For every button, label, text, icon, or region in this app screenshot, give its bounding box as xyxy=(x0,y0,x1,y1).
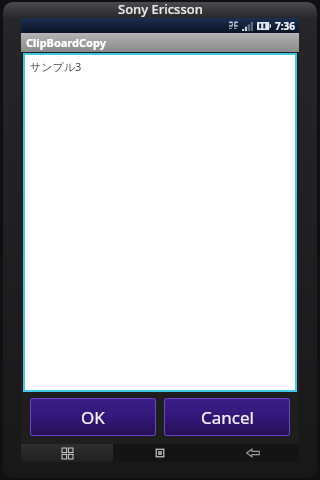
staticText: Sony Ericsson xyxy=(118,0,203,18)
button[interactable]: サンプル3 xyxy=(25,55,295,390)
button[interactable]: Home xyxy=(113,444,206,462)
staticText: Cancel xyxy=(201,406,254,429)
staticText: 7:36 xyxy=(275,19,295,33)
staticText: サンプル3 xyxy=(30,59,82,74)
button[interactable]: Back xyxy=(206,444,299,462)
staticText: ClipBoardCopy xyxy=(26,35,106,50)
button[interactable]: Menu xyxy=(21,444,113,462)
button[interactable]: OK xyxy=(31,399,155,435)
staticText: OK xyxy=(81,406,105,429)
button[interactable]: Cancel xyxy=(165,399,289,435)
